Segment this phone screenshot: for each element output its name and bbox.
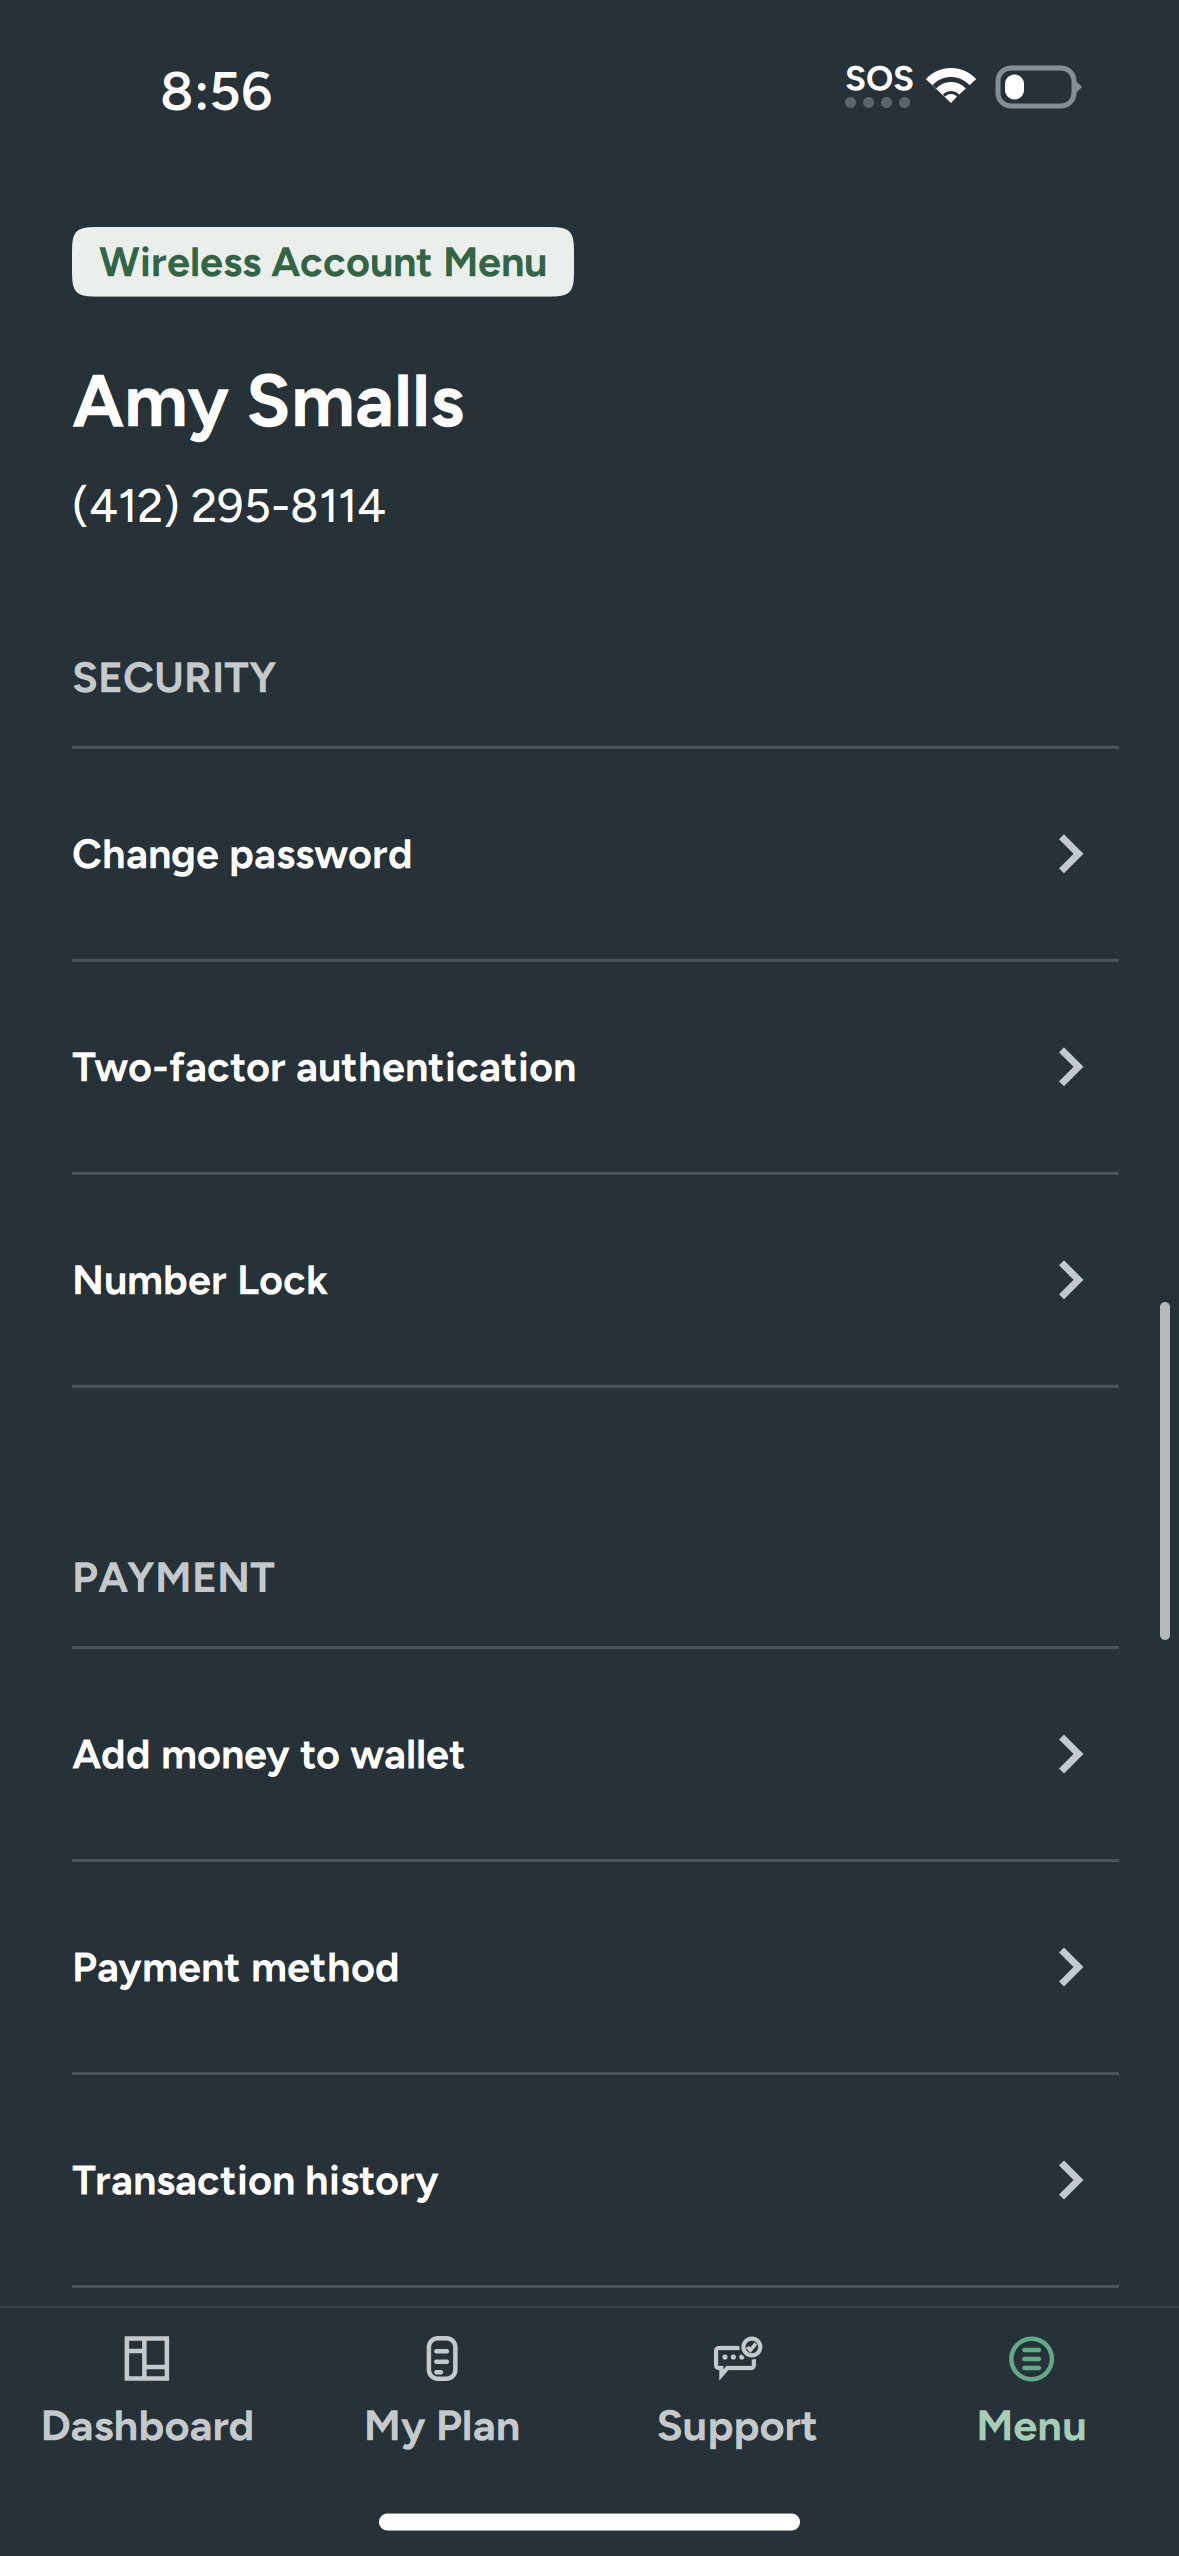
button[interactable]: Dashboard xyxy=(0,2308,295,2488)
staticText: SECURITY xyxy=(72,652,277,703)
staticText: Wireless Account Menu xyxy=(99,237,547,287)
staticText: Payment method xyxy=(72,1942,400,1992)
staticText: 8:56 xyxy=(160,58,272,124)
button[interactable]: Payment method xyxy=(0,1862,1179,2072)
button[interactable]: Support xyxy=(589,2308,884,2488)
staticText: SOS xyxy=(845,58,914,99)
staticText: Dashboard xyxy=(40,2399,254,2451)
staticText: My Plan xyxy=(364,2399,521,2451)
staticText: PAYMENT xyxy=(72,1552,275,1603)
button[interactable]: Change password xyxy=(0,749,1179,959)
button[interactable]: Transaction history xyxy=(0,2075,1179,2285)
staticText: Amy Smalls xyxy=(72,357,464,445)
staticText: (412) 295-8114 xyxy=(72,478,386,534)
button[interactable]: Number Lock xyxy=(0,1175,1179,1385)
staticText: Transaction history xyxy=(72,2155,439,2205)
staticText: Add money to wallet xyxy=(72,1729,466,1779)
staticText: Two-factor authentication xyxy=(72,1042,576,1092)
button[interactable]: Two-factor authentication xyxy=(0,962,1179,1172)
staticText: Change password xyxy=(72,829,413,879)
staticText: Support xyxy=(656,2399,817,2451)
staticText: Number Lock xyxy=(72,1255,328,1305)
button[interactable]: Add money to wallet xyxy=(0,1649,1179,1859)
button[interactable]: Wireless Account Menu xyxy=(72,227,574,297)
button[interactable]: My Plan xyxy=(295,2308,590,2488)
staticText: Menu xyxy=(976,2399,1087,2451)
button[interactable]: Menu xyxy=(884,2308,1179,2488)
